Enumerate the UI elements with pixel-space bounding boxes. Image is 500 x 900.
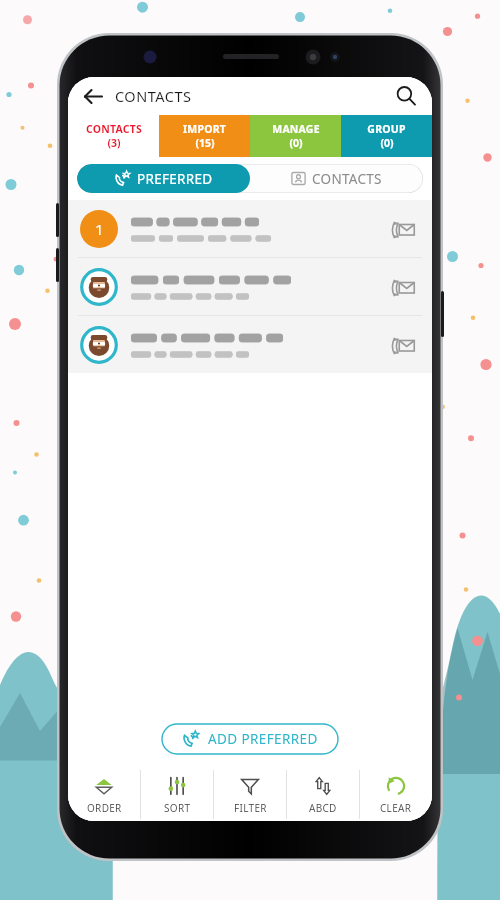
button[interactable]: Back [80,83,106,109]
button[interactable]: GROUP [341,115,432,157]
staticText: 1 [95,219,104,239]
button[interactable]: ADD PREFERRED [160,724,340,754]
staticText: CONTACTS [312,170,382,188]
button[interactable]: 1 [68,200,432,257]
button[interactable]: ABCD [287,768,359,821]
staticText: (3) [107,136,121,150]
button[interactable]: PREFERRED [77,164,250,193]
staticText: (15) [195,136,215,150]
button[interactable]: Send message [386,270,420,304]
staticText: MANAGE [272,122,320,136]
button[interactable]: IMPORT [159,115,250,157]
button[interactable]: MANAGE [250,115,341,157]
button[interactable]: Send message [386,212,420,246]
staticText: CONTACTS [115,86,192,106]
staticText: ABCD [309,801,337,815]
button[interactable]: CONTACTS [250,164,423,193]
button[interactable]: Send message [68,316,432,373]
button[interactable]: SORT [141,768,213,821]
button[interactable]: ORDER [68,768,140,821]
staticText: IMPORT [183,122,226,136]
staticText: PREFERRED [137,170,213,188]
staticText: ADD PREFERRED [208,730,318,748]
staticText: CLEAR [380,801,412,815]
button[interactable]: Search [392,82,420,110]
button[interactable]: Send message [68,258,432,315]
staticText: ORDER [87,801,122,815]
staticText: (0) [380,136,394,150]
staticText: CONTACTS [86,122,142,136]
button[interactable]: CLEAR [360,768,432,821]
button[interactable]: Send message [386,328,420,362]
staticText: GROUP [367,122,406,136]
button[interactable]: FILTER [214,768,286,821]
button[interactable]: CONTACTS [68,115,159,157]
staticText: FILTER [234,801,267,815]
staticText: SORT [164,801,191,815]
staticText: (0) [289,136,303,150]
